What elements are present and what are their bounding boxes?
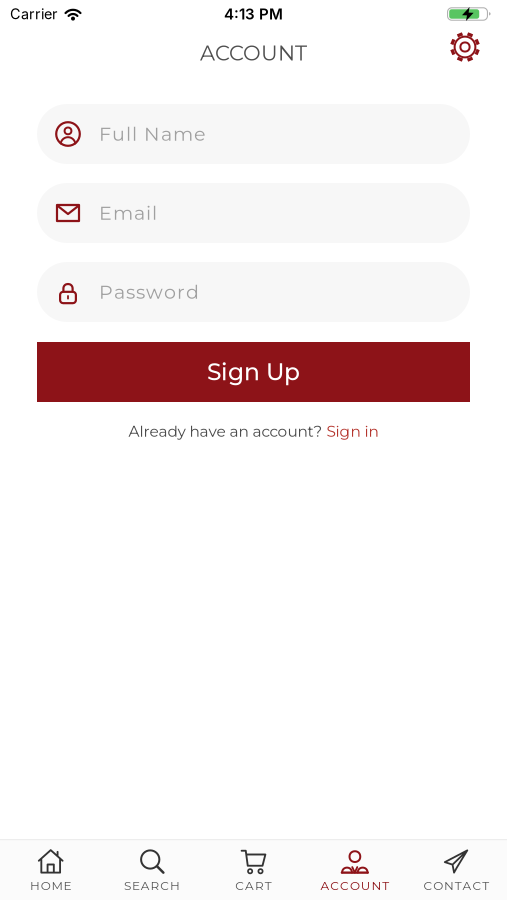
staticText: R xyxy=(255,878,264,893)
staticText: Sign Up xyxy=(207,358,300,386)
staticText: Carrier xyxy=(10,5,57,23)
staticText: A xyxy=(320,878,329,893)
staticText: T xyxy=(265,878,272,893)
staticText: O xyxy=(41,878,51,893)
staticText: Sign in xyxy=(326,422,378,441)
staticText: o xyxy=(164,280,176,304)
staticText: F xyxy=(99,122,111,146)
staticText: l xyxy=(126,122,131,146)
staticText: U xyxy=(361,878,371,893)
staticText: T xyxy=(382,878,389,893)
staticText: A xyxy=(463,878,472,893)
staticText: s xyxy=(126,280,135,304)
staticText: A xyxy=(141,878,150,893)
staticText: e xyxy=(194,122,206,146)
staticText: C xyxy=(472,878,481,893)
staticText: 4:13 PM xyxy=(224,5,283,23)
staticText: A xyxy=(245,878,254,893)
staticText: C xyxy=(423,878,432,893)
staticText: C xyxy=(235,878,244,893)
staticText: ACCOUNT xyxy=(200,40,307,66)
staticText: H xyxy=(30,878,40,893)
staticText: i xyxy=(146,201,151,225)
staticText: T xyxy=(455,878,462,893)
staticText: N xyxy=(444,878,454,893)
button[interactable]: P xyxy=(37,262,470,322)
staticText: w xyxy=(146,280,163,304)
staticText: m xyxy=(173,122,193,146)
staticText: O xyxy=(433,878,443,893)
button[interactable]: Sign Up xyxy=(37,342,470,402)
staticText: N xyxy=(371,878,381,893)
button[interactable]: C xyxy=(203,849,304,893)
staticText: P xyxy=(99,280,113,304)
staticText: a xyxy=(114,280,125,304)
staticText: T xyxy=(482,878,489,893)
staticText: a xyxy=(161,122,172,146)
staticText: E xyxy=(63,878,71,893)
staticText: E xyxy=(132,878,140,893)
staticText: S xyxy=(124,878,131,893)
staticText: s xyxy=(136,280,145,304)
button[interactable]: F xyxy=(37,104,470,164)
staticText: E xyxy=(99,201,112,225)
staticText: l xyxy=(132,122,137,146)
staticText: r xyxy=(177,280,185,304)
button[interactable]: Settings xyxy=(449,31,481,63)
staticText: a xyxy=(134,201,145,225)
button[interactable]: S xyxy=(101,849,203,893)
button[interactable]: E xyxy=(37,183,470,243)
button[interactable]: Sign in xyxy=(326,422,378,441)
staticText: H xyxy=(170,878,180,893)
staticText: O xyxy=(350,878,360,893)
staticText: C xyxy=(160,878,169,893)
staticText: C xyxy=(340,878,349,893)
staticText: Already have an account? xyxy=(128,422,326,441)
staticText: d xyxy=(186,280,199,304)
staticText: M xyxy=(52,878,63,893)
button[interactable]: A xyxy=(304,849,406,893)
button[interactable]: H xyxy=(0,849,101,893)
button[interactable]: C xyxy=(406,849,507,893)
staticText: u xyxy=(112,122,125,146)
staticText: C xyxy=(330,878,339,893)
staticText: R xyxy=(150,878,159,893)
staticText: l xyxy=(152,201,157,225)
staticText: N xyxy=(144,122,160,146)
staticText: m xyxy=(113,201,133,225)
